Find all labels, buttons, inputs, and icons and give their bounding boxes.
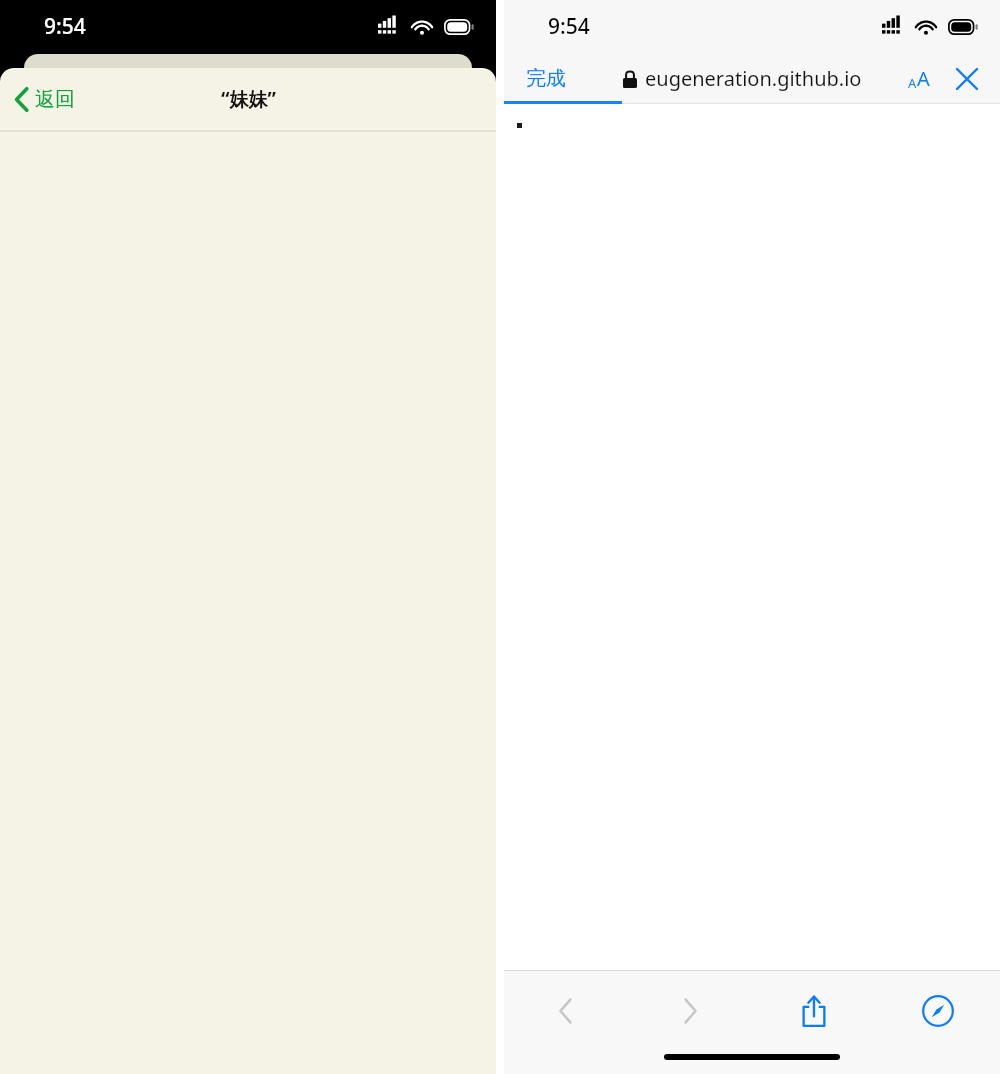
staticText: A — [908, 74, 917, 92]
staticText: 返回 — [35, 87, 75, 112]
button[interactable]: Share — [752, 970, 876, 1052]
button[interactable]: Close — [950, 62, 984, 96]
staticText: A — [917, 65, 930, 92]
button[interactable]: 返回 — [8, 78, 81, 121]
button[interactable]: Open in Safari — [876, 970, 1000, 1052]
staticText: “妹妹” — [221, 86, 276, 112]
button[interactable]: Text size — [902, 59, 936, 98]
button[interactable]: 完成 — [518, 60, 574, 97]
staticText: 9:54 — [44, 12, 86, 41]
staticText: 9:54 — [548, 12, 590, 41]
button[interactable]: Back — [504, 970, 628, 1052]
staticText: eugeneration.github.io — [645, 65, 862, 92]
button[interactable]: Forward — [628, 970, 752, 1052]
